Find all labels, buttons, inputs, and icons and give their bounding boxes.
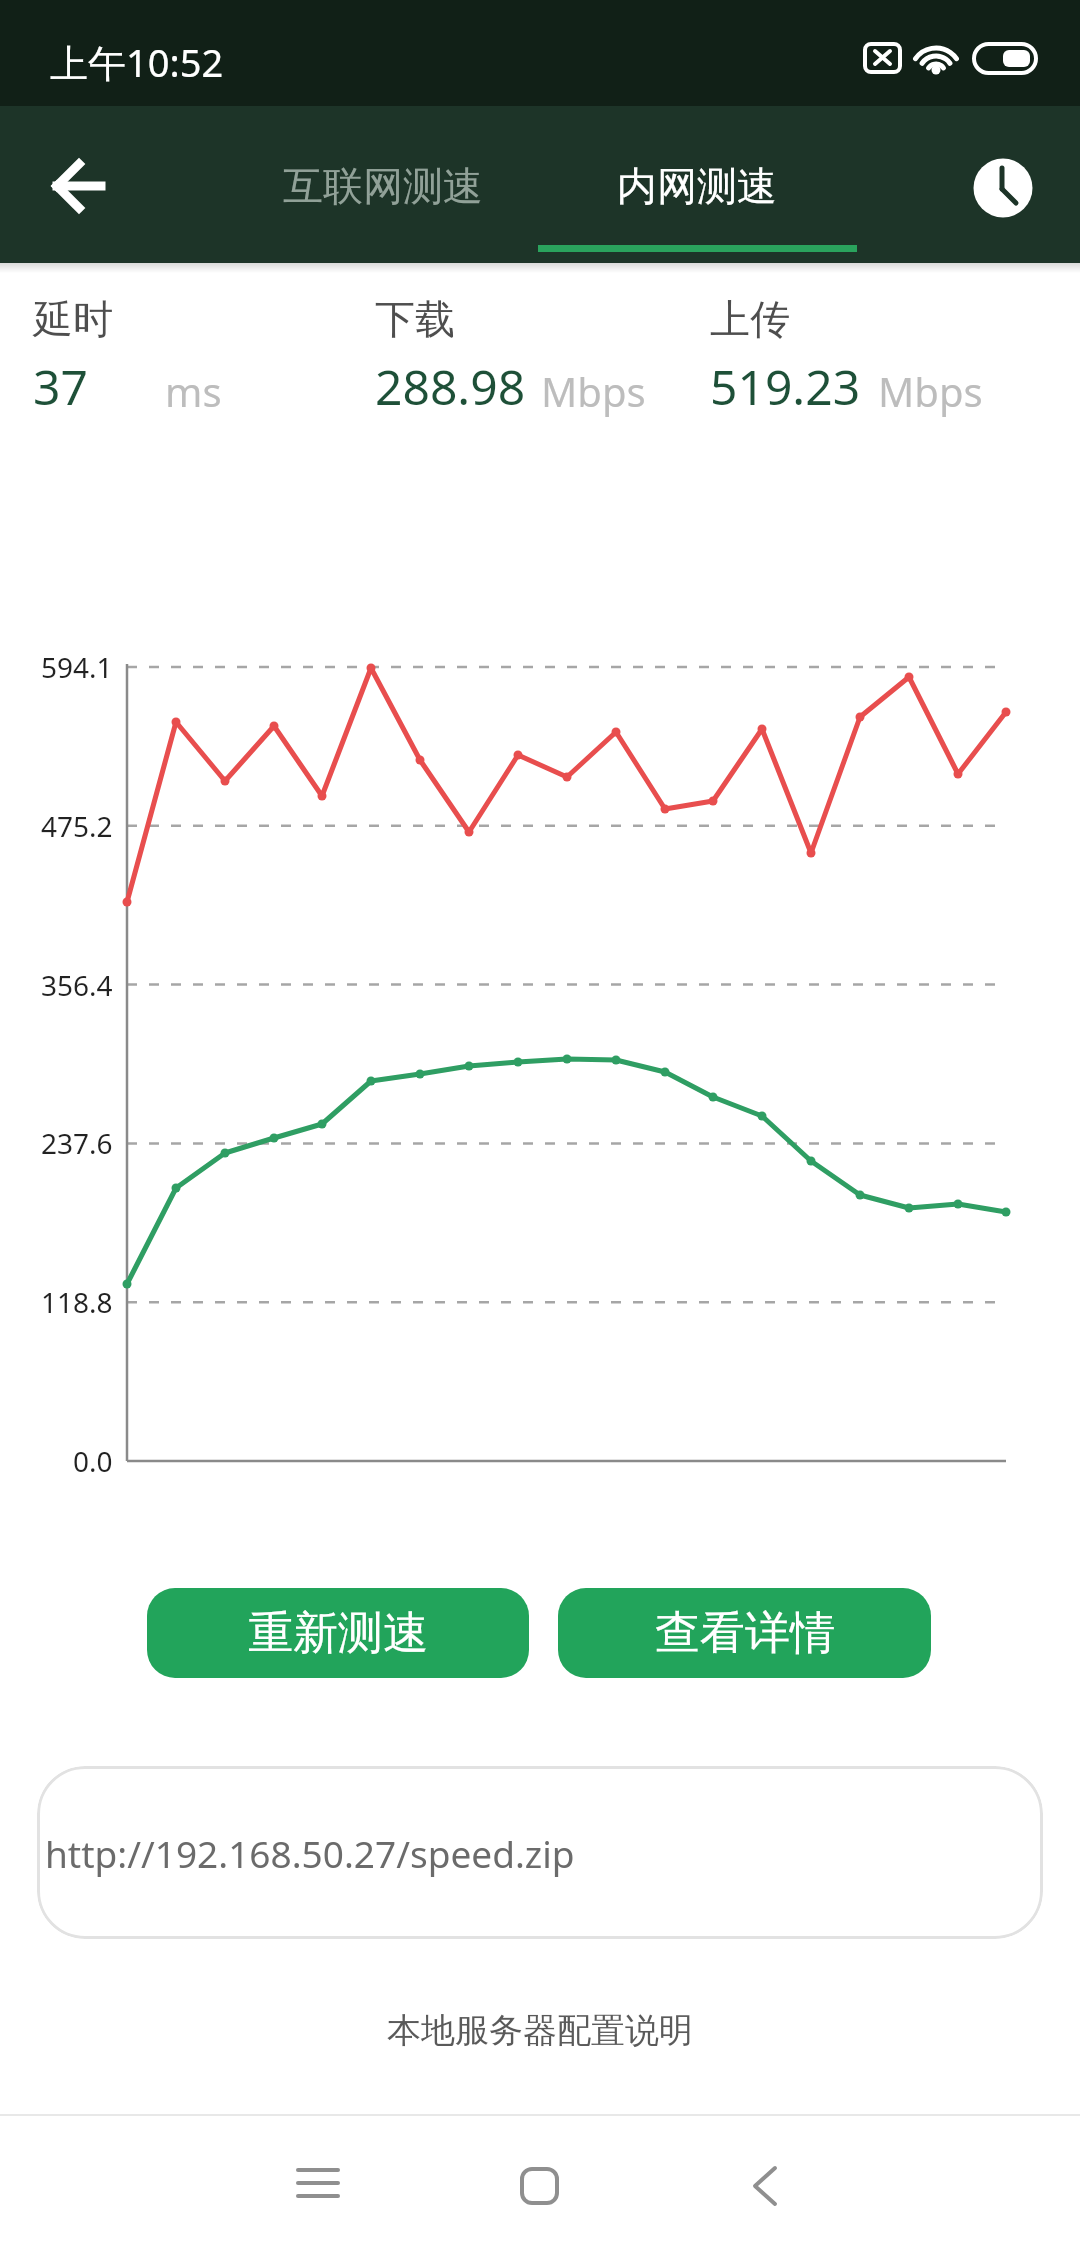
staticText: 上传	[710, 294, 790, 344]
button[interactable]: http://192.168.50.27/speed.zip	[37, 1766, 1043, 1939]
staticText: Mbps	[878, 364, 983, 418]
staticText: 重新测速	[248, 1605, 428, 1662]
staticText: 内网测速	[617, 161, 777, 211]
button[interactable]	[510, 2152, 570, 2212]
staticText: 上午10:52	[50, 36, 224, 88]
button[interactable]: 重新测速	[147, 1588, 529, 1678]
button[interactable]	[735, 2152, 795, 2212]
staticText: 下载	[375, 294, 455, 344]
staticText: 594.1	[41, 648, 113, 686]
button[interactable]: 本地服务器配置说明	[0, 2000, 1080, 2060]
button[interactable]	[288, 2152, 348, 2212]
staticText: 0.0	[73, 1442, 113, 1480]
staticText: 本地服务器配置说明	[387, 2009, 693, 2052]
staticText: 288.98	[375, 354, 526, 419]
button[interactable]	[38, 146, 118, 226]
button[interactable]: 互联网测速	[233, 146, 533, 226]
staticText: 37	[33, 354, 88, 419]
staticText: 118.8	[41, 1283, 113, 1321]
staticText: ms	[165, 364, 222, 418]
staticText: 475.2	[41, 807, 113, 845]
staticText: 356.4	[41, 966, 113, 1004]
staticText: 519.23	[710, 354, 861, 419]
button[interactable]: 查看详情	[558, 1588, 931, 1678]
staticText: 237.6	[41, 1124, 113, 1162]
staticText: 互联网测速	[283, 161, 483, 211]
button[interactable]	[958, 143, 1048, 233]
staticText: 查看详情	[655, 1605, 835, 1662]
staticText: http://192.168.50.27/speed.zip	[45, 1828, 575, 1878]
staticText: Mbps	[541, 364, 646, 418]
button[interactable]: 内网测速	[547, 146, 847, 226]
staticText: 延时	[33, 294, 113, 344]
